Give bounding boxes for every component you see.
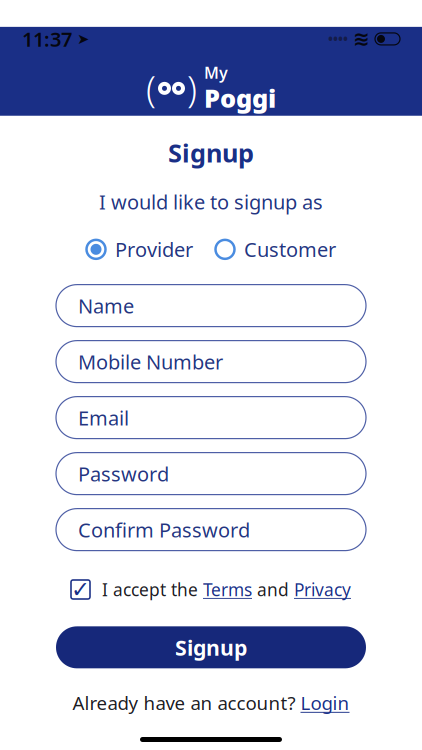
button[interactable]: Customer <box>215 236 336 263</box>
button[interactable]: Mobile Number <box>56 341 366 383</box>
staticText: Terms <box>203 578 252 601</box>
staticText: Login <box>300 690 349 715</box>
staticText: Already have an account? <box>72 690 295 715</box>
staticText: Privacy <box>294 578 351 601</box>
button[interactable]: Password <box>56 453 366 495</box>
button[interactable]: Confirm Password <box>56 509 366 551</box>
staticText: Password <box>78 460 169 487</box>
staticText: Provider <box>115 236 193 263</box>
staticText: ( <box>146 64 156 112</box>
staticText: ) <box>187 64 197 112</box>
staticText: 11:37 <box>22 26 72 52</box>
button[interactable]: Email <box>56 397 366 439</box>
button[interactable]: Already have an account? <box>72 690 349 715</box>
staticText: Mobile Number <box>78 348 223 375</box>
staticText: Poggi <box>204 81 276 115</box>
staticText: •••• <box>328 30 348 48</box>
button[interactable]: Signup <box>56 626 366 668</box>
button[interactable]: Provider <box>86 236 193 263</box>
staticText: I would like to signup as <box>99 188 323 215</box>
staticText: Signup <box>168 136 254 169</box>
staticText: Customer <box>244 236 336 263</box>
staticText: ➤ <box>77 31 89 47</box>
staticText: Name <box>78 292 134 319</box>
staticText: ≋ <box>353 28 370 50</box>
staticText: My <box>204 62 228 83</box>
staticText: I accept the <box>102 578 203 601</box>
button[interactable]: Name <box>56 285 366 327</box>
staticText: Confirm Password <box>78 516 250 543</box>
staticText: Signup <box>175 633 247 661</box>
staticText: ✓ <box>71 577 90 602</box>
button[interactable]: ✓ <box>71 577 351 602</box>
staticText: and <box>252 578 294 601</box>
staticText: Email <box>78 404 129 431</box>
